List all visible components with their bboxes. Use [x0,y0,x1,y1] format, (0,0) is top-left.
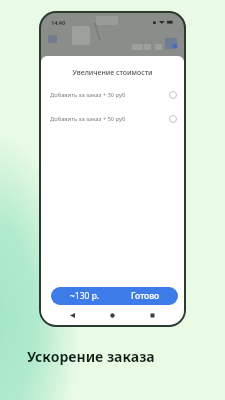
staticText: Добавить за заказ + 30 руб [50,91,126,99]
button[interactable]: Добавить за заказ + 30 руб [41,87,184,102]
staticText: 14:40 [51,19,66,26]
button[interactable]: Добавить за заказ + 50 руб [41,111,184,126]
staticText: Ускорение заказа [27,347,155,366]
staticText: ~130 р. [70,290,100,302]
button[interactable]: Back [67,310,78,321]
staticText: Добавить за заказ + 50 руб [50,115,126,123]
button[interactable]: Home [107,310,118,321]
staticText: Готово [131,290,160,302]
button[interactable]: ~130 р. [51,287,178,305]
button[interactable]: Recents [147,310,158,321]
staticText: Увеличение стоимости [41,68,184,78]
